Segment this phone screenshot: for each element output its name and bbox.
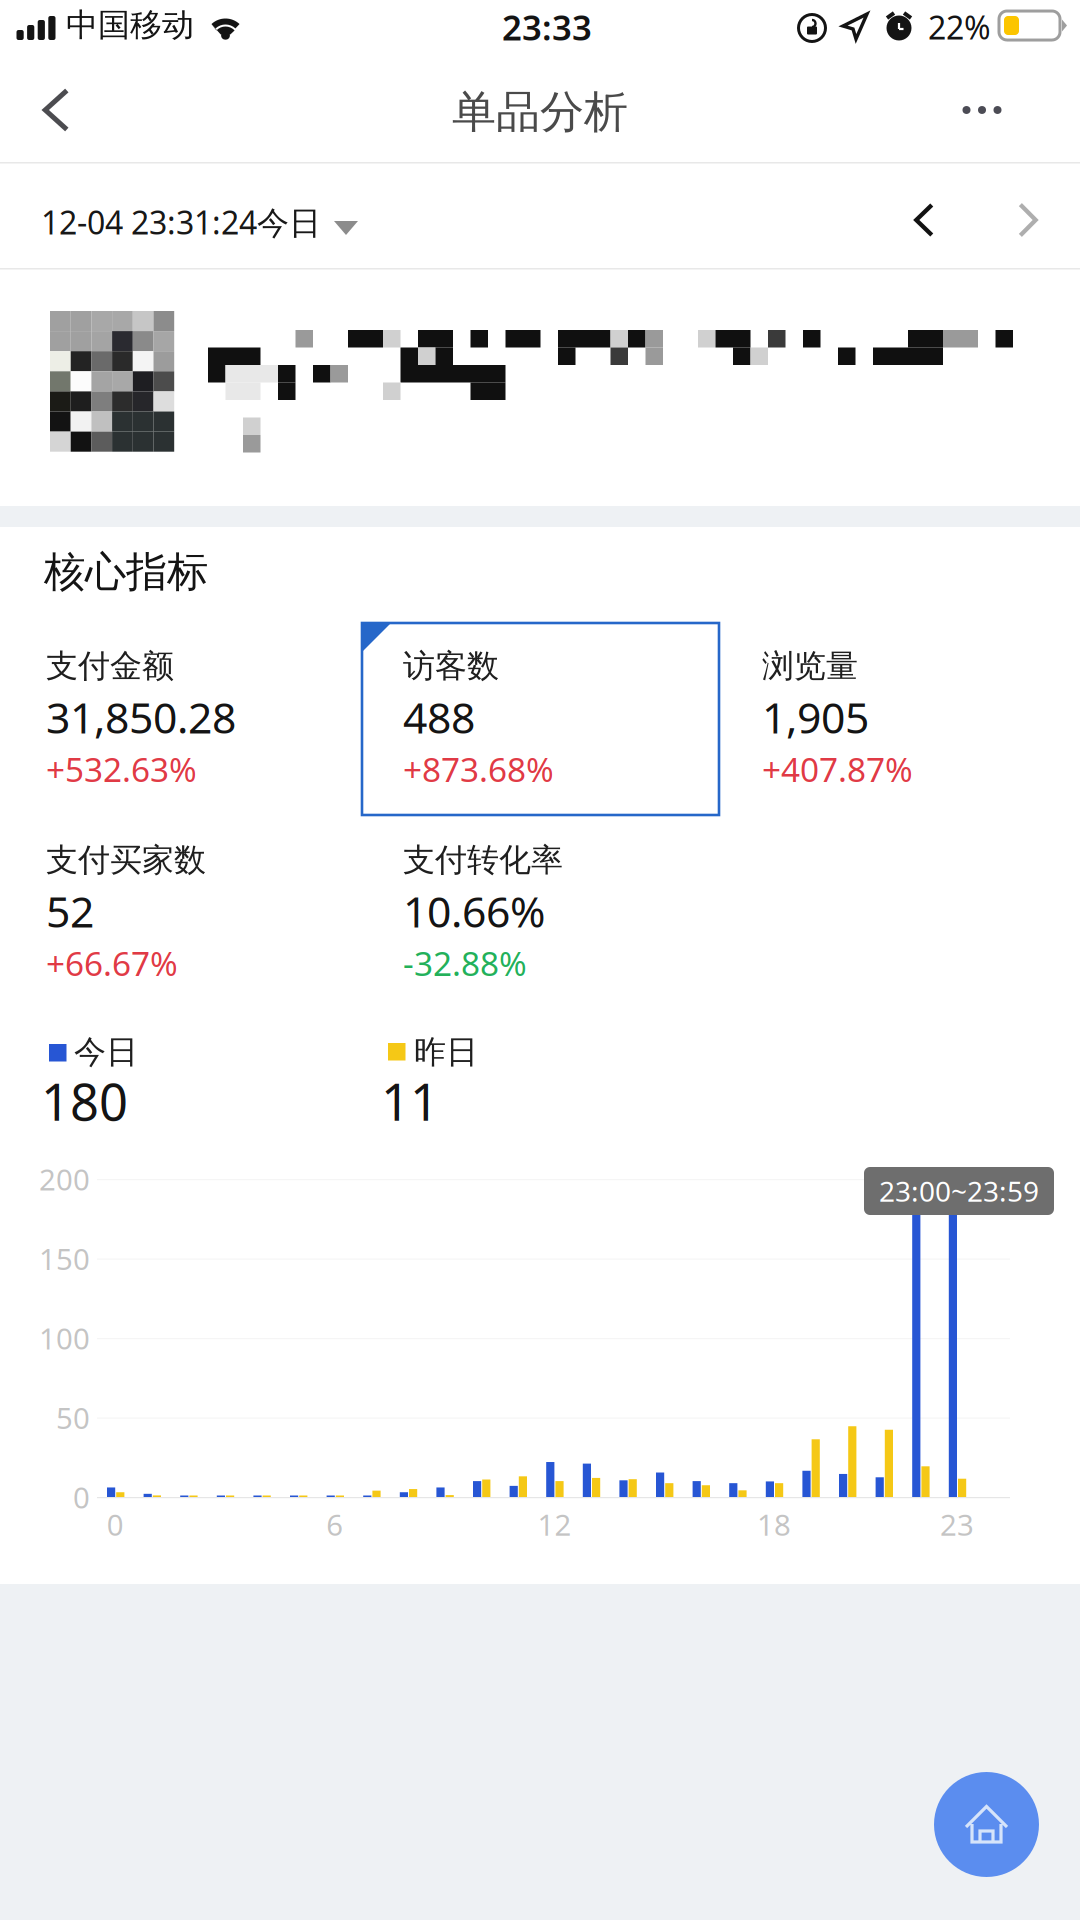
staticText: 50 [56,1398,90,1437]
staticText: 单品分析 [452,85,628,139]
button[interactable]: 支付买家数 [0,0,1080,1920]
button[interactable]: Next period [0,0,1080,1920]
staticText: 支付转化率 [403,840,563,880]
staticText: 支付金额 [46,646,174,686]
staticText: +873.68% [403,747,554,791]
staticText: 1,905 [762,689,869,745]
staticText: +66.67% [46,941,178,985]
staticText: 31,850.28 [46,689,236,745]
staticText: 22% [928,6,991,48]
button[interactable]: 支付金额 [0,0,1080,1920]
staticText: 11 [381,1067,439,1135]
staticText: 昨日 [414,1032,478,1072]
button[interactable]: More [0,0,1080,1920]
staticText: 100 [39,1318,90,1357]
staticText: +532.63% [46,747,197,791]
staticText: 10.66% [403,883,545,939]
staticText: 访客数 [403,646,499,686]
button[interactable]: Back [0,0,1080,1920]
staticText: 核心指标 [44,547,208,597]
staticText: 150 [39,1239,90,1278]
staticText: 52 [46,883,94,939]
staticText: 23 [940,1505,974,1544]
staticText: 488 [403,689,475,745]
staticText: +407.87% [762,747,913,791]
staticText: 0 [107,1505,124,1544]
staticText: 支付买家数 [46,840,206,880]
button[interactable]: Previous period [0,0,1080,1920]
staticText: 浏览量 [762,646,858,686]
staticText: 23:00~23:59 [879,1172,1039,1210]
button[interactable]: 浏览量 [0,0,1080,1920]
staticText: 200 [39,1159,90,1198]
staticText: 12-04 23:31:24今日 [41,201,321,243]
staticText: 12 [537,1505,571,1544]
staticText: 6 [326,1505,343,1544]
staticText: -32.88% [403,941,527,985]
button[interactable]: Home [0,0,1080,1920]
staticText: 0 [73,1477,90,1516]
button[interactable]: 支付转化率 [0,0,1080,1920]
staticText: 180 [41,1067,128,1135]
staticText: 中国移动 [66,5,194,45]
button[interactable]: 访客数 [0,0,1080,1920]
staticText: 23:33 [502,4,592,50]
button[interactable]: 12-04 23:31:24今日 [0,0,1080,1920]
staticText: 今日 [74,1032,138,1072]
staticText: 18 [757,1505,791,1544]
